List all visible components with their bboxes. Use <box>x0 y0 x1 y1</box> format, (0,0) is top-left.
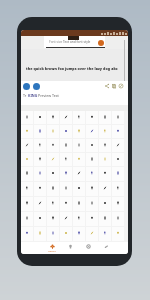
button[interactable]: Glyph 29 <box>86 153 98 166</box>
button[interactable]: Glyph 5 <box>86 111 98 124</box>
button[interactable]: Glyph 51 <box>60 197 72 211</box>
button[interactable]: Glyph 21 <box>86 139 98 152</box>
button[interactable]: Glyph 14 <box>99 125 111 138</box>
button[interactable]: Glyph 67 <box>60 227 72 241</box>
staticText: Recent <box>48 249 56 252</box>
button[interactable]: Glyph 38 <box>99 167 111 181</box>
button[interactable]: Glyph 56 <box>21 212 33 226</box>
button[interactable]: Glyph 53 <box>86 197 98 211</box>
button[interactable]: Glyph 68 <box>73 227 85 241</box>
button[interactable]: Glyph 70 <box>99 227 111 241</box>
button[interactable]: Glyph 32 <box>21 167 33 181</box>
button[interactable]: Glyph 18 <box>47 139 59 152</box>
button[interactable]: Glyph 23 <box>112 139 124 152</box>
button[interactable]: Glyph 22 <box>99 139 111 152</box>
button[interactable]: Glyph 66 <box>47 227 59 241</box>
button[interactable]: Clear formatting <box>118 83 124 89</box>
button[interactable]: Copy <box>111 83 117 89</box>
button[interactable]: Glyph 60 <box>73 212 85 226</box>
button[interactable]: Text and font style <box>63 40 91 44</box>
button[interactable]: Glyph 54 <box>99 197 111 211</box>
button[interactable]: Glyph 13 <box>86 125 98 138</box>
button[interactable]: Glyph 6 <box>99 111 111 124</box>
button[interactable]: Glyph 33 <box>34 167 46 181</box>
button[interactable]: Glyph 35 <box>60 167 72 181</box>
button[interactable]: Style option <box>23 83 30 90</box>
button[interactable]: Glyph 46 <box>99 182 111 196</box>
button[interactable]: Glyph 16 <box>21 139 33 152</box>
button[interactable]: Glyph 42 <box>47 182 59 196</box>
button[interactable]: Glyph 63 <box>112 212 124 226</box>
button[interactable]: Glyph 9 <box>34 125 46 138</box>
staticText: the quick brown fox jumps over the lazy … <box>26 66 118 71</box>
button[interactable]: Glyph 44 <box>73 182 85 196</box>
button[interactable]: Font size <box>49 40 63 44</box>
button[interactable]: Glyph 71 <box>112 227 124 241</box>
button[interactable]: More <box>97 242 115 254</box>
staticText: Font size <box>49 40 63 44</box>
button[interactable]: Recent <box>43 242 61 254</box>
button[interactable]: Glyph 17 <box>34 139 46 152</box>
button[interactable]: Glyph 49 <box>34 197 46 211</box>
button[interactable]: Glyph 31 <box>112 153 124 166</box>
button[interactable]: Style option <box>33 83 40 90</box>
staticText: Preview Text <box>38 93 59 98</box>
button[interactable]: Glyph 34 <box>47 167 59 181</box>
button[interactable]: Glyph 55 <box>112 197 124 211</box>
button[interactable]: Glyph 40 <box>21 182 33 196</box>
button[interactable]: Glyph 19 <box>60 139 72 152</box>
button[interactable]: Glyph 59 <box>60 212 72 226</box>
button[interactable]: Glyph 47 <box>112 182 124 196</box>
button[interactable]: Glyph 28 <box>73 153 85 166</box>
button[interactable]: Glyph 11 <box>60 125 72 138</box>
staticText: Text and font style <box>63 40 91 44</box>
button[interactable]: Glyph 57 <box>34 212 46 226</box>
button[interactable]: Glyph 64 <box>21 227 33 241</box>
button[interactable]: Text colour <box>98 40 104 46</box>
staticText: KING <box>28 93 38 98</box>
button[interactable]: Glyph 20 <box>73 139 85 152</box>
button[interactable]: Glyph 8 <box>21 125 33 138</box>
button[interactable]: Glyph 48 <box>21 197 33 211</box>
button[interactable]: Share <box>104 83 110 89</box>
button[interactable]: Glyph 65 <box>34 227 46 241</box>
button[interactable]: Favourites <box>61 242 79 254</box>
button[interactable]: Glyph 7 <box>112 111 124 124</box>
button[interactable]: Glyph 1 <box>34 111 46 124</box>
button[interactable]: Glyph 52 <box>73 197 85 211</box>
button[interactable]: Glyph 36 <box>73 167 85 181</box>
button[interactable]: Glyph 2 <box>47 111 59 124</box>
button[interactable]: Glyph 27 <box>60 153 72 166</box>
button[interactable]: Glyph 30 <box>99 153 111 166</box>
button[interactable]: Glyph 4 <box>73 111 85 124</box>
button[interactable]: Glyph 15 <box>112 125 124 138</box>
button[interactable]: Glyph 69 <box>86 227 98 241</box>
button[interactable]: Glyph 39 <box>112 167 124 181</box>
button[interactable]: Glyph 41 <box>34 182 46 196</box>
button[interactable]: Glyph 58 <box>47 212 59 226</box>
button[interactable]: Glyph 62 <box>99 212 111 226</box>
button[interactable]: Glyph 12 <box>73 125 85 138</box>
button[interactable]: Glyph 0 <box>21 111 33 124</box>
button[interactable]: Glyph 24 <box>21 153 33 166</box>
button[interactable]: Glyph 37 <box>86 167 98 181</box>
button[interactable]: Glyph 26 <box>47 153 59 166</box>
button[interactable]: Glyph 10 <box>47 125 59 138</box>
button[interactable]: Glyph 50 <box>47 197 59 211</box>
button[interactable]: Glyph 3 <box>60 111 72 124</box>
button[interactable]: Glyph 61 <box>86 212 98 226</box>
button[interactable]: Downloads <box>79 242 97 254</box>
button[interactable]: Glyph 43 <box>60 182 72 196</box>
staticText: Tr <box>23 93 28 98</box>
button[interactable]: Glyph 25 <box>34 153 46 166</box>
button[interactable]: Glyph 45 <box>86 182 98 196</box>
